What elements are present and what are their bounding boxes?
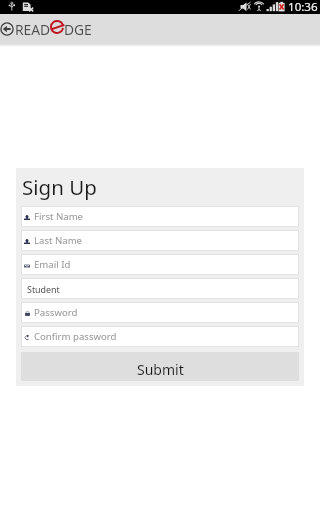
staticText: Confirm password [34, 330, 117, 343]
staticText: First Name [34, 210, 84, 223]
staticText: Last Name [34, 234, 83, 247]
button[interactable]: Back [0, 22, 14, 36]
staticText: DGE [64, 20, 92, 39]
button[interactable]: Email Id [21, 254, 299, 275]
button[interactable]: Last Name [21, 230, 299, 251]
button[interactable]: Student [21, 278, 299, 299]
staticText: 10:36 [288, 0, 318, 13]
button[interactable]: Confirm password [21, 326, 299, 347]
staticText: Student [27, 283, 60, 295]
button[interactable]: Password [21, 302, 299, 323]
staticText: Password [34, 306, 78, 319]
staticText: READ [15, 20, 51, 39]
button[interactable]: First Name [21, 206, 299, 227]
button[interactable]: Submit [21, 352, 299, 381]
staticText: Submit [137, 360, 184, 379]
staticText: Email Id [34, 258, 71, 271]
staticText: Sign Up [22, 173, 97, 201]
